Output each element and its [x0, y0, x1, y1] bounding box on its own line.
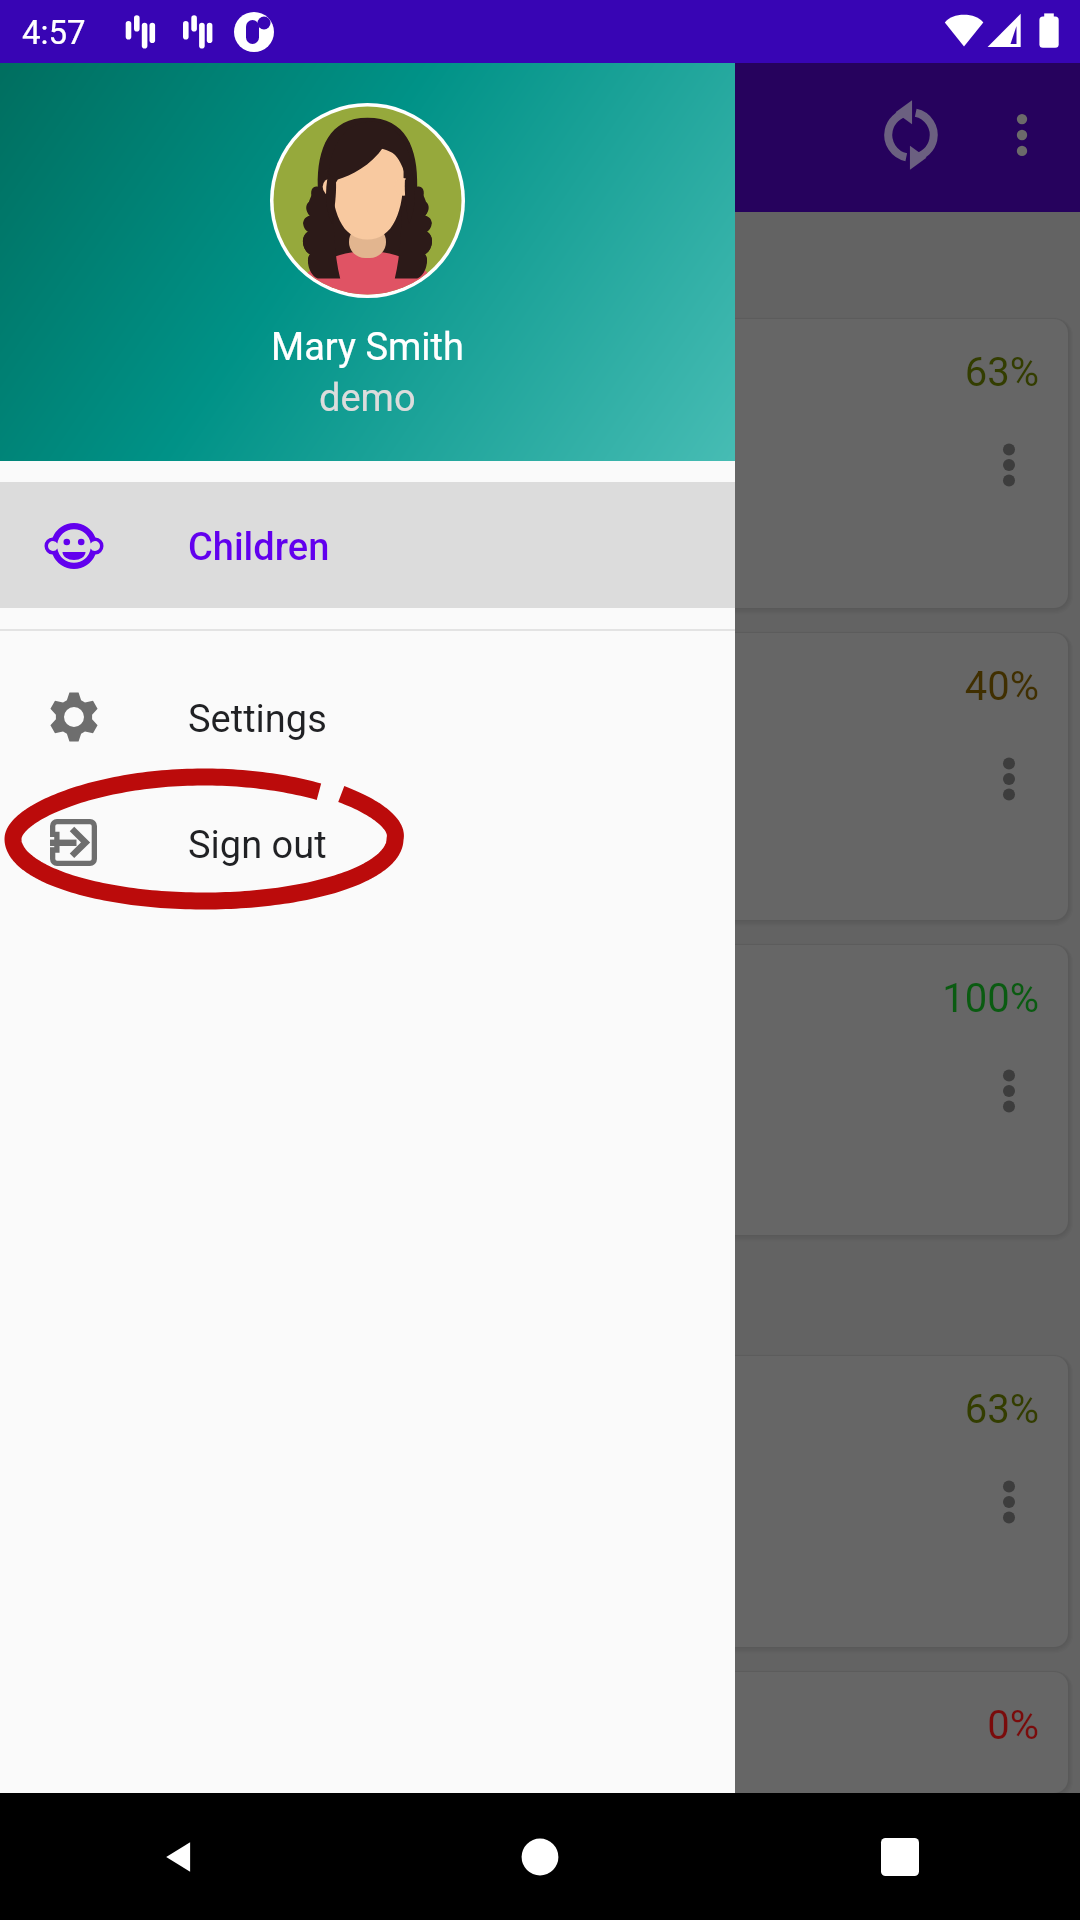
- staticText: Sign out: [188, 823, 327, 868]
- button[interactable]: Back: [0, 1793, 360, 1920]
- button[interactable]: Home: [360, 1793, 720, 1920]
- staticText: Mary Smith: [271, 325, 464, 370]
- button[interactable]: Refresh: [867, 91, 955, 179]
- button[interactable]: Item menu: [965, 421, 1053, 509]
- button[interactable]: Item menu: [965, 1458, 1053, 1546]
- staticText: 40%: [13, 663, 1039, 710]
- staticText: Children: [188, 525, 330, 570]
- button[interactable]: 63%: [13, 1356, 1068, 1647]
- staticText: 63%: [13, 1386, 1039, 1433]
- button[interactable]: Settings: [0, 657, 735, 783]
- button[interactable]: 40%: [13, 633, 1068, 920]
- staticText: demo: [319, 376, 416, 421]
- staticText: 4:57: [22, 13, 86, 52]
- button[interactable]: Sign out: [0, 783, 735, 909]
- staticText: 63%: [13, 349, 1039, 396]
- button[interactable]: Recent apps: [720, 1793, 1080, 1920]
- button[interactable]: Item menu: [965, 1047, 1053, 1135]
- button[interactable]: 100%: [13, 945, 1068, 1235]
- staticText: 0%: [13, 1702, 1039, 1749]
- button[interactable]: Children: [0, 482, 735, 608]
- button[interactable]: 63%: [13, 319, 1068, 608]
- button[interactable]: Item menu: [965, 735, 1053, 823]
- staticText: 100%: [13, 975, 1039, 1022]
- button[interactable]: 0%: [13, 1672, 1068, 1793]
- button[interactable]: More options: [978, 91, 1066, 179]
- staticText: Settings: [188, 697, 327, 742]
